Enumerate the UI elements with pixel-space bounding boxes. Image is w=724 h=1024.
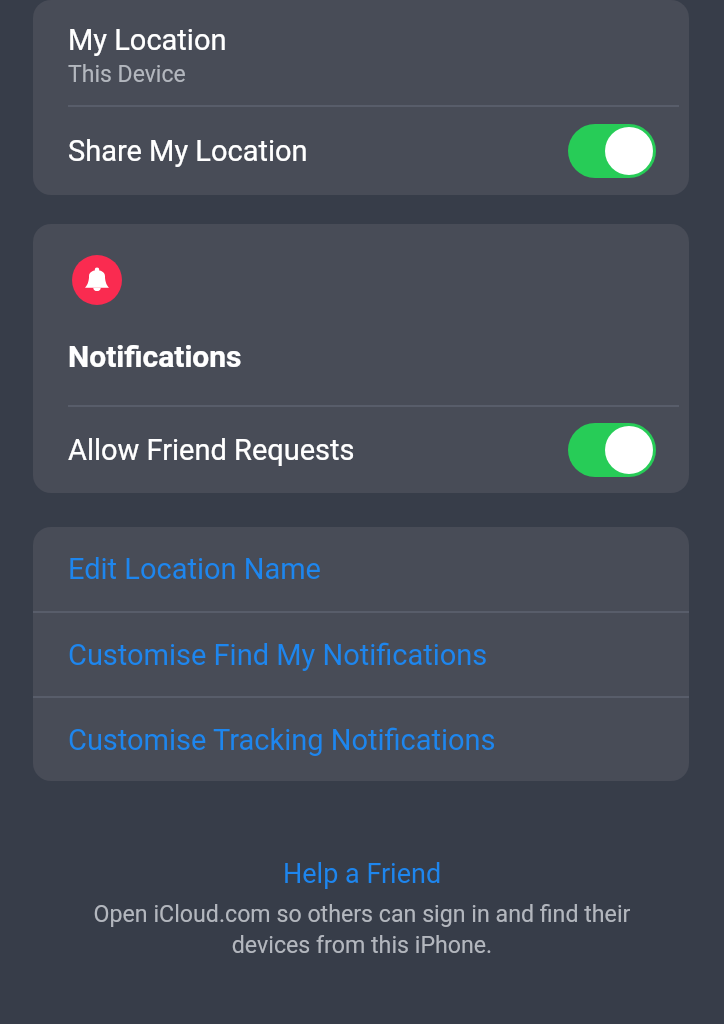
staticText: Open iCloud.com so others can sign in an… (84, 900, 640, 958)
button[interactable]: Edit Location Name (33, 527, 689, 611)
staticText: Notifications (68, 339, 242, 374)
button[interactable]: Allow Friend Requests (568, 423, 656, 477)
button[interactable]: Notifications (33, 224, 689, 405)
button[interactable]: Customise Find My Notifications (33, 613, 689, 696)
button[interactable]: Customise Tracking Notifications (33, 698, 689, 781)
button[interactable]: Share My Location (33, 107, 689, 195)
staticText: Allow Friend Requests (68, 433, 355, 467)
staticText: This Device (68, 61, 186, 88)
staticText: My Location (68, 23, 227, 57)
staticText: Help a Friend (283, 858, 442, 890)
staticText: Edit Location Name (68, 552, 321, 586)
button[interactable]: Share My Location (568, 124, 656, 178)
staticText: Customise Find My Notifications (68, 638, 488, 672)
other: Notifications (72, 255, 122, 305)
button[interactable]: Allow Friend Requests (33, 407, 689, 493)
button[interactable]: Help a Friend (275, 855, 450, 893)
staticText: Customise Tracking Notifications (68, 723, 496, 757)
button[interactable]: My Location (33, 0, 689, 105)
staticText: Share My Location (68, 134, 308, 168)
